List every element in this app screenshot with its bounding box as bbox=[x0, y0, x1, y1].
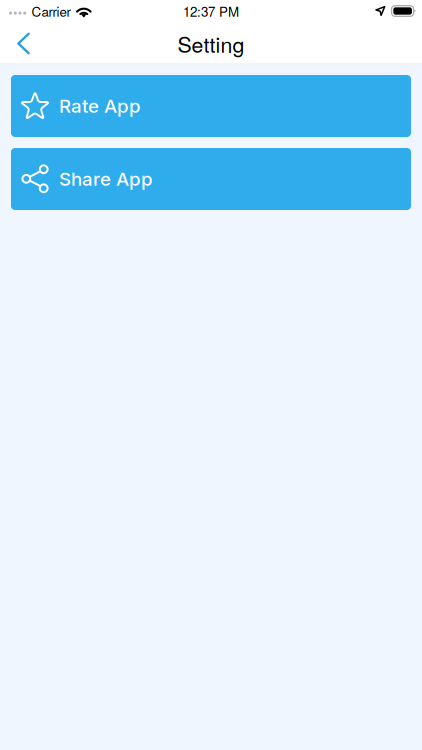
staticText: Rate App bbox=[59, 95, 141, 117]
button[interactable]: Back bbox=[0, 22, 44, 65]
staticText: Setting bbox=[177, 28, 244, 59]
staticText: Carrier bbox=[31, 1, 70, 21]
button[interactable]: Share App bbox=[11, 148, 411, 210]
staticText: 12:37 PM bbox=[183, 1, 239, 21]
button[interactable]: Rate App bbox=[11, 75, 411, 137]
staticText: Share App bbox=[59, 168, 153, 190]
